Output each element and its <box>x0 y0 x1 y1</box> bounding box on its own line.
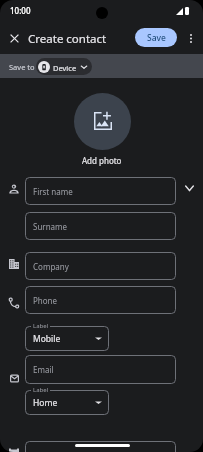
staticText: 10:00 <box>10 5 31 16</box>
button[interactable]: Company <box>25 252 176 280</box>
button[interactable]: Surname <box>25 212 176 240</box>
staticText: Home <box>33 397 58 409</box>
staticText: Add photo <box>82 155 122 166</box>
button[interactable]: First name <box>25 177 176 205</box>
staticText: Mobile <box>33 333 61 345</box>
button[interactable]: Expand name fields <box>178 177 200 199</box>
button[interactable]: Close <box>2 26 26 50</box>
staticText: Create contact <box>28 31 107 47</box>
button[interactable]: Phone <box>25 286 176 314</box>
button[interactable]: Mobile <box>25 326 109 351</box>
button[interactable]: Home <box>25 390 109 415</box>
button[interactable]: Add photo <box>74 93 131 150</box>
staticText: Save to <box>9 62 35 72</box>
button[interactable]: More options <box>179 26 203 50</box>
button[interactable] <box>25 441 176 452</box>
staticText: Save <box>147 32 166 44</box>
staticText: First name <box>33 186 73 197</box>
staticText: Label <box>33 386 49 394</box>
button[interactable]: Save <box>135 28 177 47</box>
staticText: Company <box>33 261 69 272</box>
staticText: Surname <box>33 221 68 232</box>
staticText: Phone <box>33 295 58 306</box>
button[interactable]: Email <box>25 355 176 384</box>
staticText: Email <box>33 364 54 375</box>
staticText: Device <box>53 63 77 73</box>
staticText: Label <box>33 322 49 330</box>
button[interactable]: Device <box>36 58 92 75</box>
